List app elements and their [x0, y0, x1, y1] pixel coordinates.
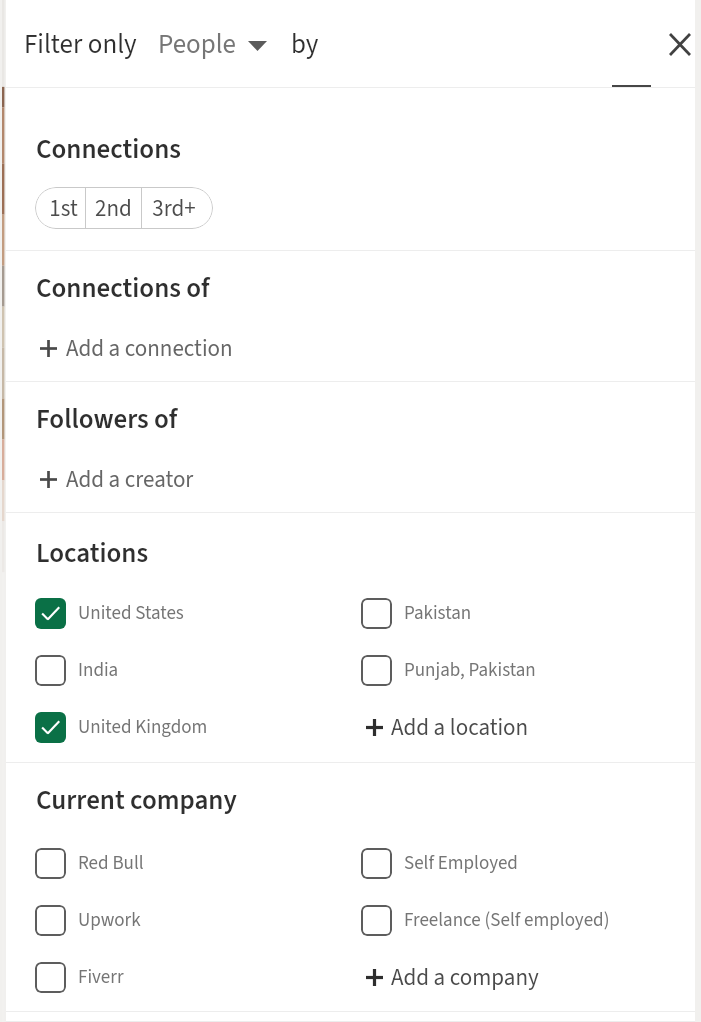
- button[interactable]: Add a company: [366, 961, 539, 994]
- button[interactable]: Add a location: [366, 711, 529, 744]
- staticText: Add a location: [391, 711, 529, 744]
- button[interactable]: United Kingdom: [35, 712, 208, 743]
- button[interactable]: Add a connection: [40, 332, 233, 365]
- staticText: 1st: [49, 192, 78, 225]
- staticText: Followers of: [36, 400, 178, 438]
- button[interactable]: Add a creator: [40, 463, 194, 496]
- button[interactable]: Punjab, Pakistan: [361, 655, 536, 686]
- button[interactable]: India: [35, 655, 119, 686]
- button[interactable]: Upwork: [35, 905, 141, 936]
- staticText: Pakistan: [404, 600, 472, 627]
- staticText: Add a company: [391, 961, 539, 994]
- button[interactable]: People: [137, 25, 291, 63]
- staticText: Connections: [36, 130, 181, 168]
- staticText: Fiverr: [78, 964, 124, 991]
- staticText: Locations: [36, 534, 149, 572]
- button[interactable]: Fiverr: [35, 962, 124, 993]
- staticText: by: [291, 25, 319, 63]
- button[interactable]: 2nd: [86, 187, 141, 229]
- staticText: Punjab, Pakistan: [404, 657, 536, 684]
- button[interactable]: Freelance (Self employed): [361, 905, 610, 936]
- button[interactable]: United States: [35, 598, 184, 629]
- staticText: Filter only: [24, 25, 137, 63]
- button[interactable]: 3rd+: [142, 187, 213, 229]
- staticText: India: [78, 657, 119, 684]
- staticText: Current company: [36, 781, 237, 819]
- button[interactable]: 1st: [35, 187, 85, 229]
- staticText: People: [158, 25, 236, 63]
- button[interactable]: Red Bull: [35, 848, 144, 879]
- staticText: United Kingdom: [78, 714, 208, 741]
- button[interactable]: Close: [658, 22, 701, 66]
- button[interactable]: Pakistan: [361, 598, 472, 629]
- button[interactable]: Self Employed: [361, 848, 518, 879]
- staticText: Upwork: [78, 907, 141, 934]
- staticText: Self Employed: [404, 850, 518, 877]
- staticText: Add a creator: [66, 463, 194, 496]
- staticText: United States: [78, 600, 184, 627]
- staticText: Connections of: [36, 269, 210, 307]
- staticText: Red Bull: [78, 850, 144, 877]
- staticText: 2nd: [95, 192, 132, 225]
- staticText: Freelance (Self employed): [404, 907, 610, 934]
- staticText: 3rd+: [152, 192, 196, 225]
- staticText: Add a connection: [66, 332, 233, 365]
